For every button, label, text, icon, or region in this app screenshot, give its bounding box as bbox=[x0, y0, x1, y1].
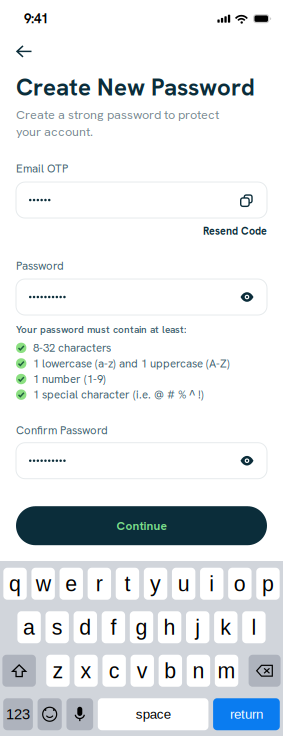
button[interactable]: t bbox=[116, 568, 139, 600]
staticText: o bbox=[234, 572, 246, 596]
button[interactable]: g bbox=[130, 611, 153, 643]
staticText: f bbox=[110, 615, 116, 639]
button[interactable]: h bbox=[158, 611, 181, 643]
staticText: your account. bbox=[16, 123, 93, 140]
staticText: Confirm Password bbox=[16, 423, 108, 438]
button[interactable]: d bbox=[74, 611, 97, 643]
staticText: b bbox=[164, 659, 176, 683]
button[interactable]: n bbox=[187, 655, 210, 687]
button[interactable]: o bbox=[228, 568, 251, 600]
staticText: w bbox=[36, 572, 51, 596]
staticText: t bbox=[124, 572, 130, 596]
button[interactable]: b bbox=[159, 655, 182, 687]
staticText: return bbox=[230, 707, 263, 722]
staticText: 123 bbox=[6, 706, 30, 722]
staticText: z bbox=[52, 659, 63, 683]
staticText: y bbox=[150, 572, 161, 596]
staticText: 1 lowercase (a-z) and 1 uppercase (A-Z) bbox=[33, 356, 230, 371]
staticText: x bbox=[80, 659, 91, 683]
staticText: g bbox=[135, 615, 147, 639]
button[interactable]: a bbox=[17, 611, 41, 643]
staticText: 1 special character (i.e. @ # % ^ !) bbox=[33, 387, 204, 402]
button[interactable]: c bbox=[102, 655, 126, 687]
button[interactable]: Shift bbox=[2, 655, 36, 687]
button[interactable]: j bbox=[186, 611, 209, 643]
staticText: Your password must contain at least: bbox=[16, 323, 186, 336]
staticText: Password bbox=[16, 258, 64, 273]
staticText: i bbox=[209, 572, 214, 596]
staticText: Continue bbox=[116, 518, 166, 533]
button[interactable]: return bbox=[213, 698, 280, 730]
button[interactable]: y bbox=[144, 568, 167, 600]
staticText: v bbox=[137, 659, 148, 683]
button[interactable]: Dictate bbox=[66, 698, 93, 730]
staticText: space bbox=[136, 707, 171, 722]
button[interactable]: v bbox=[130, 655, 154, 687]
button[interactable]: k bbox=[214, 611, 237, 643]
button[interactable]: m bbox=[215, 655, 238, 687]
staticText: p bbox=[262, 572, 274, 596]
staticText: 8-32 characters bbox=[33, 340, 111, 355]
staticText: a bbox=[23, 615, 35, 639]
staticText: j bbox=[195, 615, 200, 639]
button[interactable]: e bbox=[59, 568, 83, 600]
staticText: e bbox=[65, 572, 77, 596]
staticText: Create a strong password to protect bbox=[16, 106, 219, 123]
staticText: Create New Password bbox=[16, 71, 255, 103]
staticText: l bbox=[251, 615, 256, 639]
button[interactable]: x bbox=[74, 655, 98, 687]
button[interactable]: Emoji bbox=[38, 698, 62, 730]
staticText: n bbox=[192, 659, 204, 683]
staticText: r bbox=[96, 572, 103, 596]
button[interactable]: Back bbox=[16, 41, 32, 62]
staticText: 9:41 bbox=[24, 10, 48, 27]
button[interactable]: w bbox=[31, 568, 55, 600]
button[interactable]: r bbox=[88, 568, 111, 600]
staticText: c bbox=[109, 659, 120, 683]
staticText: Resend Code bbox=[203, 224, 267, 238]
button[interactable]: q bbox=[3, 568, 27, 600]
staticText: m bbox=[217, 659, 235, 683]
staticText: 1 number (1-9) bbox=[33, 372, 106, 386]
staticText: u bbox=[178, 572, 190, 596]
button[interactable]: l bbox=[242, 611, 266, 643]
button[interactable]: 123 bbox=[3, 698, 33, 730]
button[interactable]: u bbox=[172, 568, 195, 600]
staticText: Email OTP bbox=[16, 161, 68, 176]
staticText: s bbox=[52, 615, 63, 639]
button[interactable]: space bbox=[98, 698, 208, 730]
staticText: h bbox=[164, 615, 176, 639]
staticText: d bbox=[79, 615, 91, 639]
button[interactable]: Resend Code bbox=[203, 224, 267, 238]
button[interactable]: Continue bbox=[16, 506, 267, 545]
button[interactable]: z bbox=[46, 655, 70, 687]
button[interactable]: f bbox=[102, 611, 125, 643]
button[interactable]: p bbox=[256, 568, 280, 600]
button[interactable]: i bbox=[200, 568, 223, 600]
button[interactable]: Delete bbox=[249, 655, 281, 687]
staticText: q bbox=[9, 572, 21, 596]
button[interactable]: s bbox=[45, 611, 69, 643]
staticText: k bbox=[220, 615, 231, 639]
